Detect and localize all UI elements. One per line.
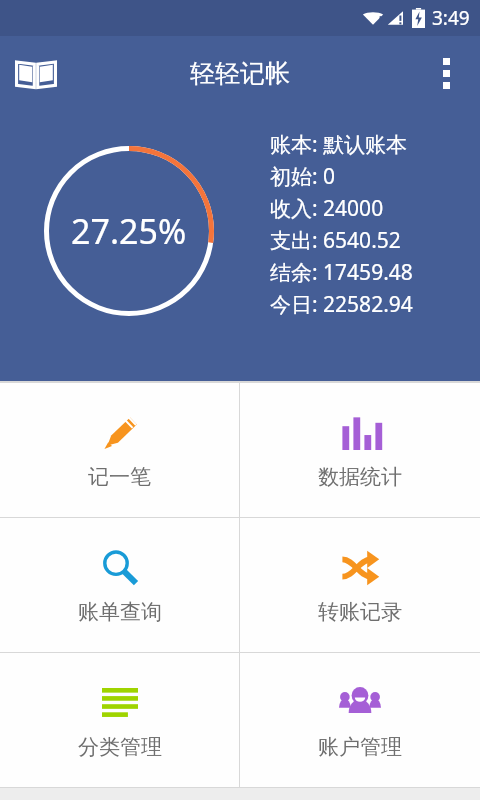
- staticText: 轻轻记帐: [190, 58, 290, 89]
- button[interactable]: 账单查询: [0, 518, 239, 652]
- staticText: 数据统计: [318, 464, 402, 490]
- staticText: 初始: 0: [270, 162, 336, 191]
- staticText: 3:49: [432, 5, 470, 31]
- staticText: 分类管理: [78, 734, 162, 760]
- staticText: 结余: 17459.48: [270, 258, 413, 287]
- staticText: 收入: 24000: [270, 194, 384, 223]
- staticText: 支出: 6540.52: [270, 226, 401, 255]
- button[interactable]: More options: [420, 47, 472, 99]
- button[interactable]: Account book: [6, 43, 66, 103]
- button[interactable]: 转账记录: [240, 518, 480, 652]
- staticText: 记一笔: [88, 464, 151, 490]
- staticText: 转账记录: [318, 599, 402, 625]
- staticText: 27.25%: [71, 208, 187, 254]
- button[interactable]: 分类管理: [0, 653, 239, 787]
- staticText: 账本: 默认账本: [270, 130, 408, 159]
- staticText: 账单查询: [78, 599, 162, 625]
- button[interactable]: 账户管理: [240, 653, 480, 787]
- staticText: 今日: 22582.94: [270, 290, 413, 319]
- button[interactable]: 记一笔: [0, 383, 239, 517]
- staticText: 账户管理: [318, 734, 402, 760]
- button[interactable]: 数据统计: [240, 383, 480, 517]
